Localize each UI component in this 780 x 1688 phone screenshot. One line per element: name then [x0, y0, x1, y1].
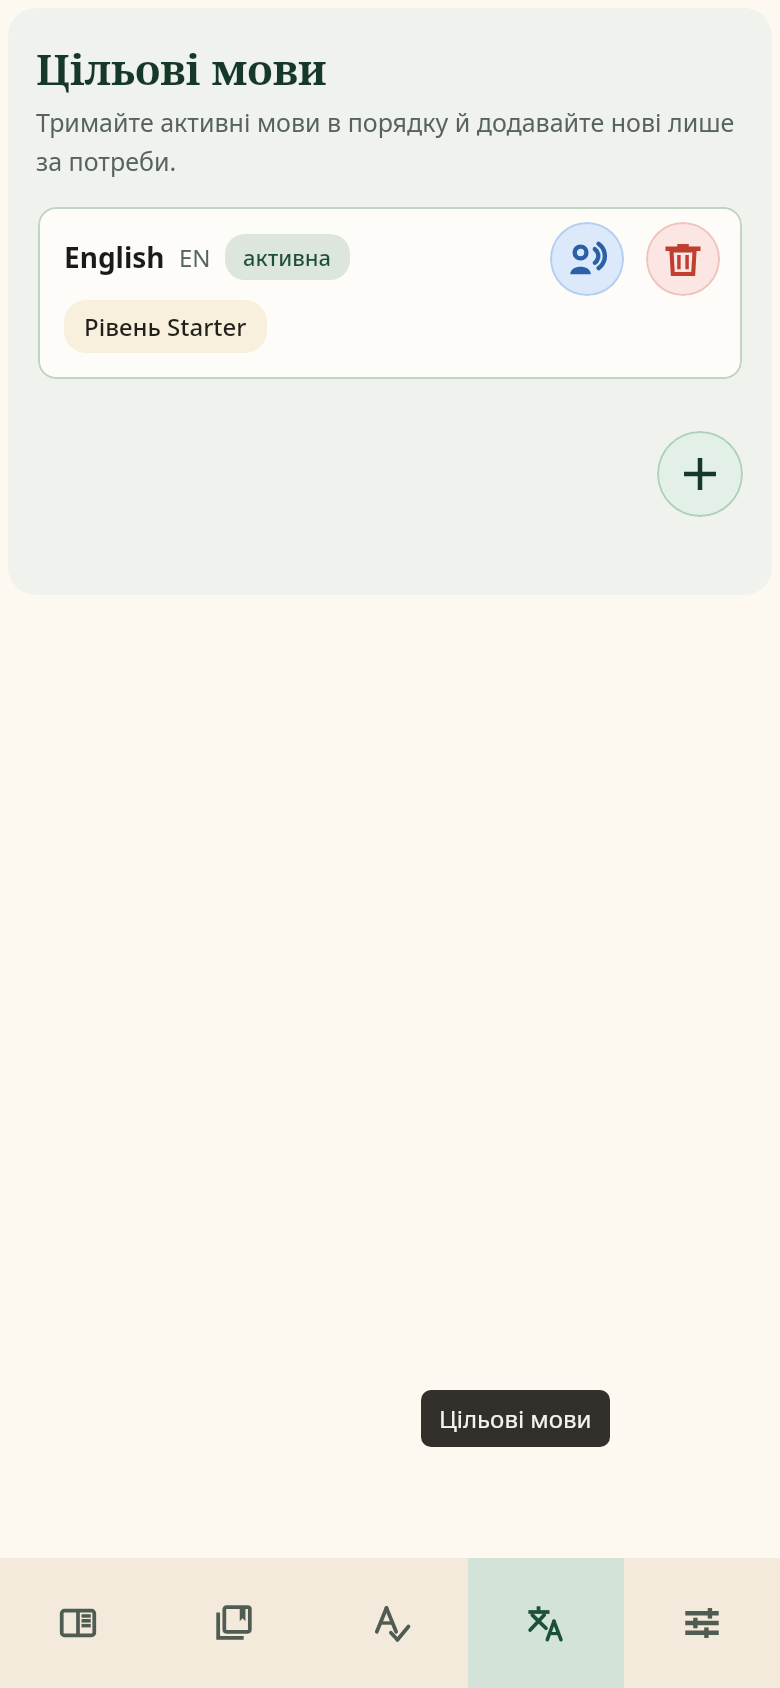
staticText: English	[64, 238, 165, 276]
button[interactable]: Delete	[646, 222, 720, 296]
staticText: Рівень Starter	[84, 310, 247, 343]
staticText: Цільові мови	[36, 40, 327, 97]
button[interactable]: Spellcheck	[312, 1558, 468, 1688]
button[interactable]: English	[38, 207, 742, 379]
button[interactable]: Library	[156, 1558, 312, 1688]
button[interactable]: Speak	[550, 222, 624, 296]
button[interactable]: Reader	[0, 1558, 156, 1688]
button[interactable]: Target languages	[468, 1558, 624, 1688]
staticText: EN	[179, 241, 211, 274]
staticText: Тримайте активні мови в порядку й додава…	[36, 105, 746, 179]
button[interactable]: Add language	[657, 431, 743, 517]
button[interactable]: Settings	[624, 1558, 780, 1688]
staticText: Цільові мови	[439, 1402, 592, 1435]
staticText: активна	[243, 242, 332, 272]
